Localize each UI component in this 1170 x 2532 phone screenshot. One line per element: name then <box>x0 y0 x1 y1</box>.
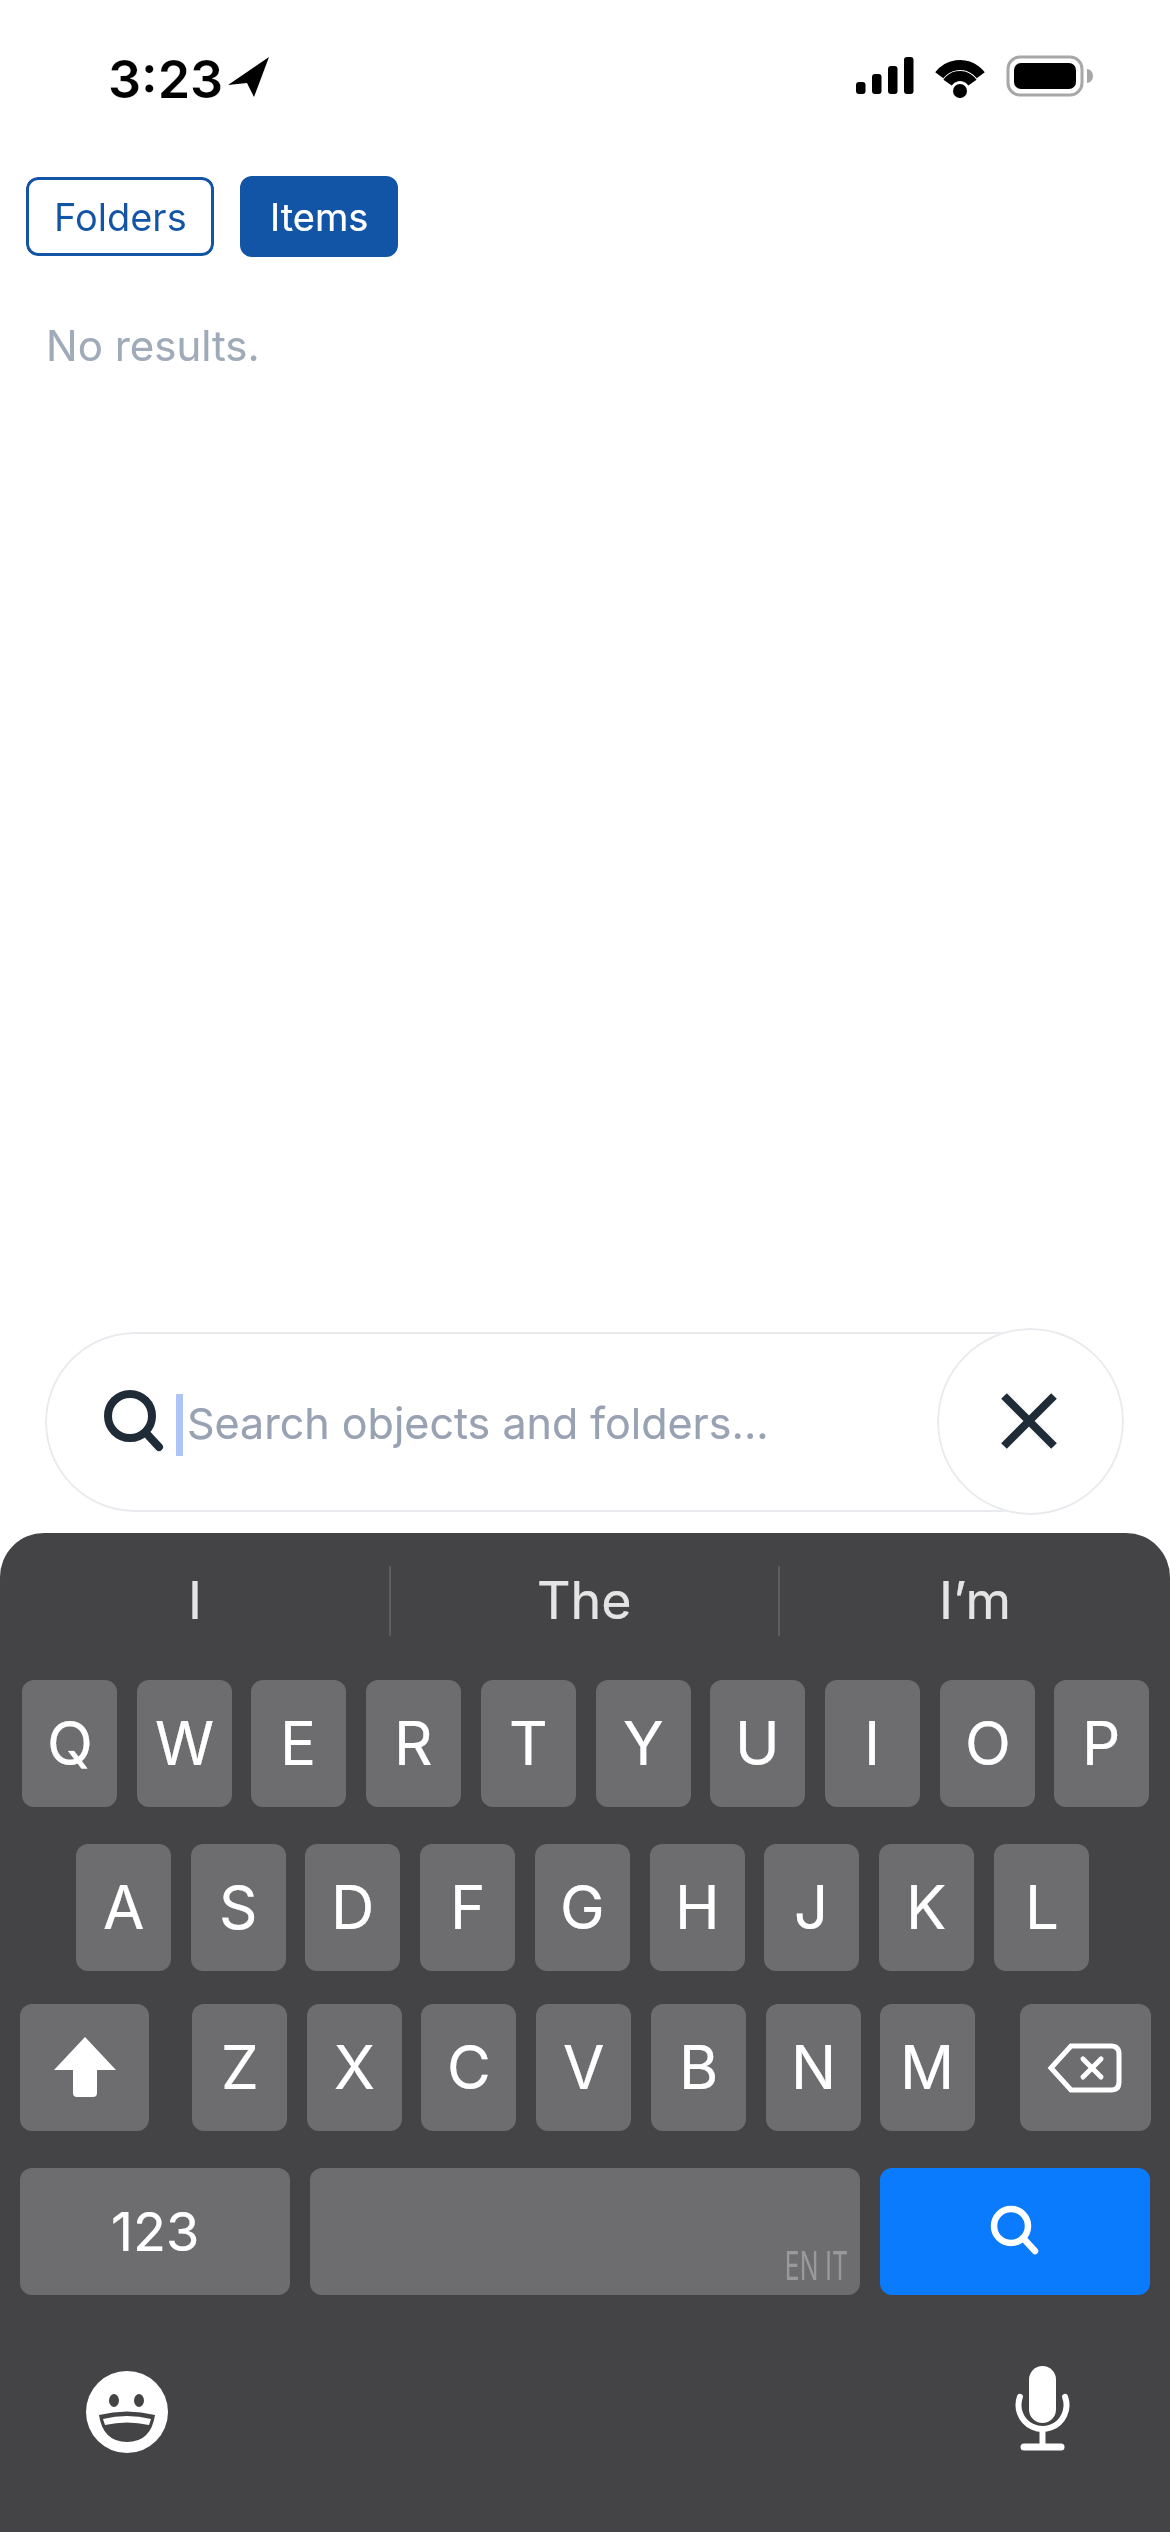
staticText: P <box>1082 1707 1121 1780</box>
staticText: H <box>675 1871 720 1944</box>
staticText: The <box>537 1569 632 1632</box>
button[interactable] <box>1020 2004 1151 2131</box>
staticText: 123 <box>111 2199 200 2264</box>
button[interactable]: Folders <box>26 177 214 256</box>
button[interactable]: I <box>0 1563 389 1638</box>
staticText: R <box>394 1707 433 1780</box>
button[interactable]: V <box>536 2004 631 2131</box>
button[interactable]: P <box>1054 1680 1149 1807</box>
button[interactable]: S <box>191 1844 286 1971</box>
button[interactable]: L <box>994 1844 1089 1971</box>
button[interactable]: X <box>307 2004 402 2131</box>
button[interactable]: Z <box>192 2004 287 2131</box>
staticText: N <box>791 2031 837 2104</box>
staticText: Search objects and folders... <box>187 1397 769 1449</box>
staticText: A <box>103 1871 145 1944</box>
button[interactable]: F <box>420 1844 515 1971</box>
button[interactable] <box>45 1332 1122 1512</box>
staticText: M <box>900 2031 955 2104</box>
staticText: F <box>450 1871 486 1944</box>
staticText: Folders <box>54 194 187 240</box>
staticText: D <box>331 1871 375 1944</box>
staticText: EN IT <box>785 2241 848 2289</box>
staticText: 3:23 <box>108 48 224 111</box>
staticText: No results. <box>46 320 260 371</box>
button[interactable]: W <box>137 1680 232 1807</box>
button[interactable]: I <box>825 1680 920 1807</box>
button[interactable] <box>937 1328 1124 1515</box>
button[interactable]: The <box>390 1563 778 1638</box>
button[interactable] <box>20 2004 149 2131</box>
staticText: Z <box>221 2031 259 2104</box>
button[interactable]: B <box>651 2004 746 2131</box>
button[interactable]: U <box>710 1680 805 1807</box>
staticText: I <box>864 1707 881 1780</box>
staticText: G <box>560 1871 605 1944</box>
staticText: T <box>509 1707 548 1780</box>
button[interactable]: D <box>305 1844 400 1971</box>
staticText: U <box>735 1707 780 1780</box>
staticText: V <box>563 2031 605 2104</box>
staticText: I <box>188 1569 202 1632</box>
button[interactable]: M <box>880 2004 975 2131</box>
button[interactable]: A <box>76 1844 171 1971</box>
button[interactable]: I’m <box>779 1563 1170 1638</box>
staticText: Y <box>623 1707 664 1780</box>
button[interactable]: O <box>940 1680 1035 1807</box>
button[interactable]: N <box>766 2004 861 2131</box>
staticText: Items <box>270 194 369 240</box>
staticText: X <box>334 2031 375 2104</box>
button[interactable]: 123 <box>20 2168 290 2295</box>
button[interactable]: Y <box>596 1680 691 1807</box>
staticText: C <box>447 2031 491 2104</box>
button[interactable]: R <box>366 1680 461 1807</box>
staticText: L <box>1025 1871 1059 1944</box>
staticText: O <box>965 1707 1011 1780</box>
button[interactable]: Q <box>22 1680 117 1807</box>
button[interactable] <box>85 2370 169 2454</box>
button[interactable]: J <box>764 1844 859 1971</box>
staticText: S <box>219 1871 258 1944</box>
button[interactable]: Items <box>240 176 398 257</box>
button[interactable] <box>1008 2358 1078 2454</box>
staticText: K <box>906 1871 947 1944</box>
button[interactable]: C <box>421 2004 516 2131</box>
staticText: J <box>794 1871 829 1944</box>
button[interactable]: T <box>481 1680 576 1807</box>
staticText: I’m <box>939 1569 1011 1632</box>
button[interactable]: H <box>650 1844 745 1971</box>
staticText: E <box>280 1707 317 1780</box>
button[interactable] <box>880 2168 1150 2295</box>
button[interactable]: G <box>535 1844 630 1971</box>
button[interactable]: K <box>879 1844 974 1971</box>
button[interactable]: EN IT <box>310 2168 860 2295</box>
staticText: Q <box>47 1707 93 1780</box>
staticText: W <box>155 1707 215 1780</box>
button[interactable]: E <box>251 1680 346 1807</box>
staticText: B <box>679 2031 719 2104</box>
